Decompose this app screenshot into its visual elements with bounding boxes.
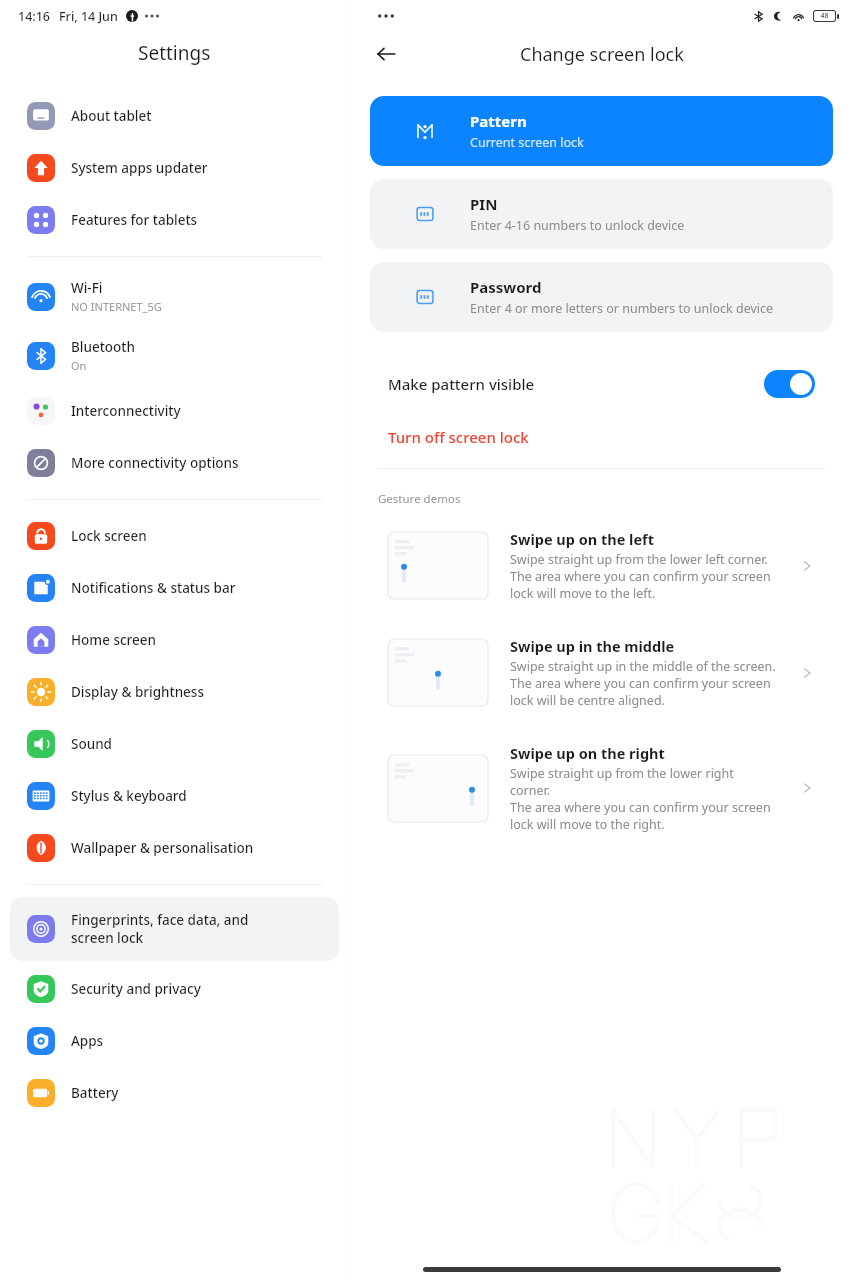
- staticText: Stylus & keyboard: [71, 787, 187, 805]
- button[interactable]: Fingerprints, face data, and screen lock: [10, 897, 339, 961]
- staticText: Swipe straight up in the middle of the s…: [510, 658, 776, 709]
- button[interactable]: Battery: [10, 1069, 339, 1117]
- staticText: 14:16: [18, 8, 51, 25]
- staticText: Home screen: [71, 631, 156, 649]
- button[interactable]: Pattern: [370, 96, 833, 166]
- button[interactable]: Wi-Fi: [10, 269, 339, 324]
- button[interactable]: Swipe up on the left: [370, 525, 833, 606]
- staticText: Enter 4 or more letters or numbers to un…: [470, 300, 774, 317]
- staticText: Lock screen: [71, 527, 147, 545]
- button[interactable]: Security and privacy: [10, 965, 339, 1013]
- staticText: Notifications & status bar: [71, 579, 236, 597]
- staticText: Features for tablets: [71, 211, 198, 229]
- staticText: About tablet: [71, 107, 152, 125]
- staticText: System apps updater: [71, 159, 208, 177]
- button[interactable]: Wallpaper & personalisation: [10, 824, 339, 872]
- button[interactable]: About tablet: [10, 92, 339, 140]
- button[interactable]: Features for tablets: [10, 196, 339, 244]
- staticText: On: [71, 358, 87, 373]
- button[interactable]: Turn off screen lock: [370, 420, 833, 454]
- button[interactable]: Apps: [10, 1017, 339, 1065]
- staticText: Gesture demos: [378, 491, 461, 507]
- button[interactable]: Display & brightness: [10, 668, 339, 716]
- button[interactable]: More connectivity options: [10, 439, 339, 487]
- staticText: Swipe up on the right: [510, 743, 665, 763]
- staticText: Fingerprints, face data, and screen lock: [71, 911, 249, 947]
- staticText: Battery: [71, 1084, 119, 1102]
- staticText: Wallpaper & personalisation: [71, 839, 254, 857]
- staticText: Fri, 14 Jun: [59, 8, 118, 25]
- staticText: Wi-Fi: [71, 279, 103, 297]
- button[interactable]: Interconnectivity: [10, 387, 339, 435]
- button[interactable]: Notifications & status bar: [10, 564, 339, 612]
- staticText: 48: [820, 11, 829, 21]
- button[interactable]: Swipe up on the right: [370, 739, 833, 837]
- staticText: More connectivity options: [71, 454, 239, 472]
- button[interactable]: Stylus & keyboard: [10, 772, 339, 820]
- button[interactable]: PIN: [370, 179, 833, 249]
- button[interactable]: Back: [366, 34, 406, 74]
- button[interactable]: System apps updater: [10, 144, 339, 192]
- staticText: Bluetooth: [71, 338, 135, 356]
- staticText: Swipe up on the left: [510, 529, 654, 549]
- staticText: Change screen lock: [520, 42, 684, 67]
- button[interactable]: Sound: [10, 720, 339, 768]
- staticText: Current screen lock: [470, 134, 584, 151]
- staticText: Password: [470, 277, 542, 297]
- staticText: NO INTERNET_5G: [71, 299, 162, 314]
- staticText: PIN: [470, 194, 498, 214]
- button[interactable]: Swipe up in the middle: [370, 632, 833, 713]
- staticText: Security and privacy: [71, 980, 201, 998]
- staticText: Enter 4-16 numbers to unlock device: [470, 217, 685, 234]
- staticText: Apps: [71, 1032, 104, 1050]
- button[interactable]: Home screen: [10, 616, 339, 664]
- button[interactable]: Lock screen: [10, 512, 339, 560]
- staticText: Display & brightness: [71, 683, 204, 701]
- staticText: Swipe straight up from the lower right c…: [510, 765, 771, 833]
- staticText: Make pattern visible: [388, 374, 535, 394]
- staticText: Turn off screen lock: [388, 427, 529, 447]
- button[interactable]: Bluetooth: [10, 328, 339, 383]
- staticText: Swipe straight up from the lower left co…: [510, 551, 771, 602]
- button[interactable]: Make pattern visible: [370, 358, 833, 410]
- staticText: Interconnectivity: [71, 402, 181, 420]
- staticText: Pattern: [470, 111, 527, 131]
- staticText: Swipe up in the middle: [510, 636, 675, 656]
- staticText: Sound: [71, 735, 112, 753]
- button[interactable]: Password: [370, 262, 833, 332]
- staticText: Settings: [138, 40, 211, 66]
